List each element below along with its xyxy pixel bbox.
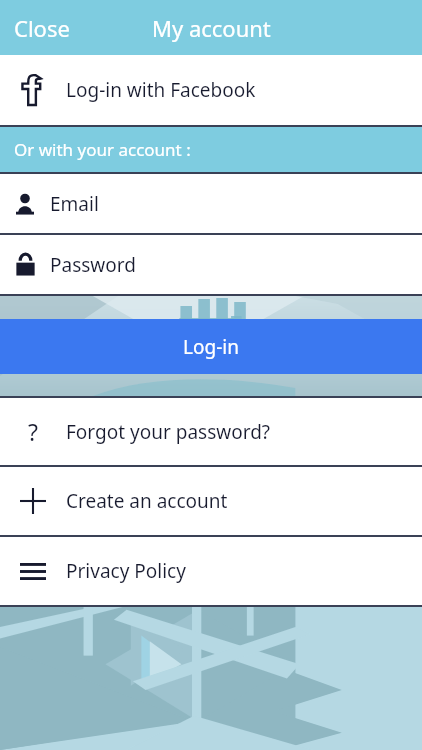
other: Create an account: [20, 488, 46, 514]
button[interactable]: Create an account: [0, 467, 422, 535]
button[interactable]: Facebook: [0, 55, 422, 125]
staticText: Privacy Policy: [66, 558, 186, 584]
button[interactable]: Privacy Policy: [0, 537, 422, 605]
button[interactable]: Email: [0, 174, 422, 233]
button[interactable]: ?: [0, 398, 422, 465]
staticText: Email: [50, 191, 99, 217]
staticText: ?: [28, 416, 38, 447]
staticText: Password: [50, 252, 136, 278]
staticText: Create an account: [66, 488, 228, 514]
staticText: Forgot your password?: [66, 419, 271, 445]
button[interactable]: Password: [0, 235, 422, 294]
staticText: My account: [152, 13, 271, 43]
staticText: Close: [14, 13, 70, 43]
button[interactable]: Close: [2, 5, 82, 51]
staticText: Or with your account :: [14, 138, 191, 161]
staticText: Log-in with Facebook: [66, 77, 256, 103]
other: Facebook: [21, 74, 45, 106]
staticText: Log-in: [183, 334, 239, 360]
button[interactable]: Log-in: [0, 319, 422, 374]
